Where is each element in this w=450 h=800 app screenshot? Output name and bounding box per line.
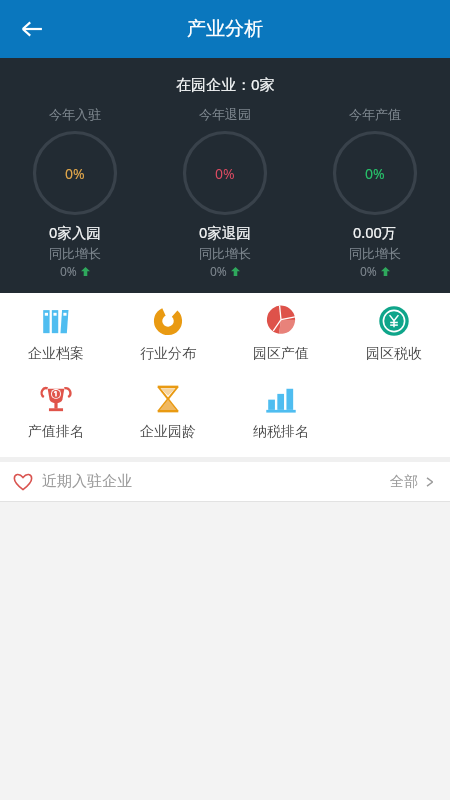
staticText: 同比增长 xyxy=(49,245,101,261)
staticText: 产值排名 xyxy=(28,423,84,441)
staticText: 企业档案 xyxy=(28,345,84,363)
staticText: 行业分布 xyxy=(140,345,196,363)
staticText: 企业园龄 xyxy=(140,423,196,441)
staticText: 0% xyxy=(210,263,227,279)
staticText: 0% xyxy=(215,164,235,183)
staticText: 在园企业：0家 xyxy=(176,74,275,94)
staticText: 0% xyxy=(360,263,377,279)
staticText: 近期入驻企业 xyxy=(42,472,132,491)
staticText: 今年退园 xyxy=(199,106,251,122)
staticText: 今年产值 xyxy=(349,106,401,122)
staticText: 今年入驻 xyxy=(49,106,101,122)
button[interactable]: 纳税排名 xyxy=(224,381,337,443)
staticText: 园区税收 xyxy=(366,345,422,363)
staticText: 同比增长 xyxy=(199,245,251,261)
staticText: 0% xyxy=(365,164,385,183)
staticText: 产业分析 xyxy=(187,17,263,41)
staticText: 0家退园 xyxy=(199,222,251,242)
staticText: 0家入园 xyxy=(49,222,101,242)
button[interactable]: 企业园龄 xyxy=(112,381,224,443)
button[interactable]: Back xyxy=(8,5,56,53)
staticText: 0% xyxy=(65,164,85,183)
staticText: 全部 xyxy=(390,473,418,491)
button[interactable]: 园区税收 xyxy=(337,303,450,365)
button[interactable]: 产值排名 xyxy=(0,381,112,443)
button[interactable]: 行业分布 xyxy=(112,303,224,365)
button[interactable]: 园区产值 xyxy=(224,303,337,365)
staticText: 0.00万 xyxy=(353,222,397,242)
staticText: 同比增长 xyxy=(349,245,401,261)
button[interactable]: 企业档案 xyxy=(0,303,112,365)
staticText: 纳税排名 xyxy=(253,423,309,441)
button[interactable]: 近期入驻企业 xyxy=(0,462,450,501)
staticText: 园区产值 xyxy=(253,345,309,363)
staticText: 0% xyxy=(60,263,77,279)
